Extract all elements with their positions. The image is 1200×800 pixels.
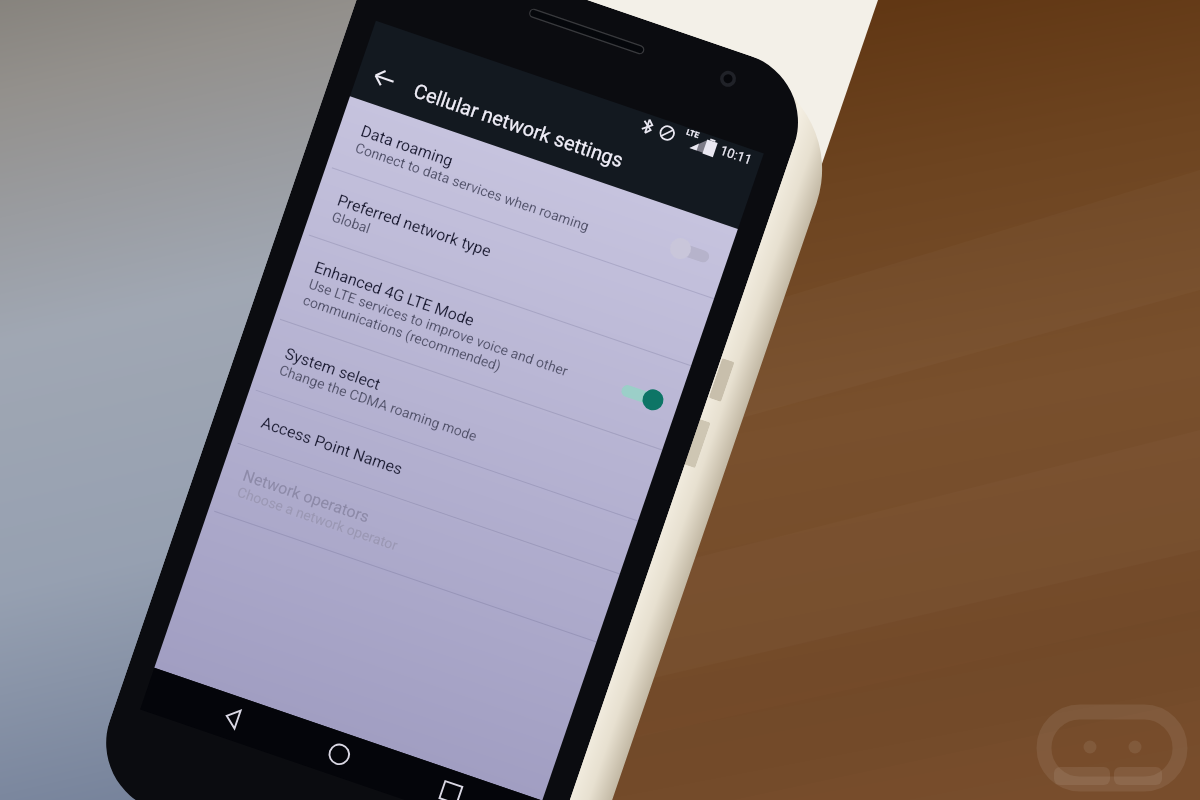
staticText: System select — [282, 344, 383, 394]
staticText: Global — [330, 208, 373, 237]
button[interactable]: Switch on — [616, 376, 669, 416]
button[interactable]: Network operators — [209, 442, 620, 642]
staticText: Enhanced 4G LTE Mode — [312, 258, 477, 330]
staticText: Network operators — [241, 466, 373, 527]
button[interactable]: Switch off — [665, 232, 719, 272]
staticText: Use LTE services to improve voice and ot… — [301, 276, 570, 396]
button[interactable]: Access Point Names — [232, 389, 638, 573]
button[interactable]: Navigate up — [368, 62, 401, 95]
button[interactable]: Data roaming — [326, 96, 738, 298]
staticText: Choose a network operator — [235, 484, 400, 554]
staticText: 10:11 — [718, 143, 754, 168]
staticText: Preferred network type — [335, 190, 494, 261]
staticText: Cellular network settings — [411, 78, 627, 171]
staticText: LTE — [685, 127, 700, 140]
button[interactable]: Preferred network type — [303, 166, 714, 365]
button[interactable]: Enhanced 4G LTE Mode — [274, 233, 691, 450]
staticText: Connect to data services when roaming — [353, 139, 591, 234]
staticText: Change the CDMA roaming mode — [277, 362, 479, 444]
staticText: Access Point Names — [259, 413, 406, 479]
staticText: Data roaming — [358, 121, 455, 170]
button[interactable]: System select — [250, 318, 662, 520]
